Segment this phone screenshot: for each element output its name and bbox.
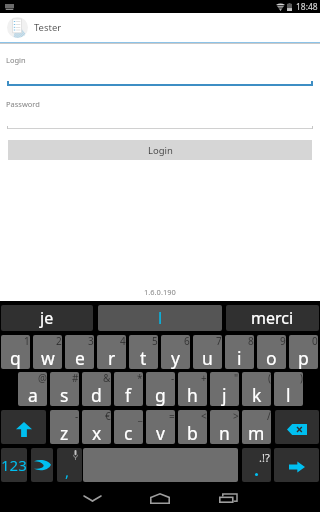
staticText: * <box>137 372 143 385</box>
staticText: w <box>41 346 55 369</box>
staticText: h <box>187 383 198 406</box>
button[interactable]: Login <box>8 140 312 160</box>
button[interactable]: Punctuation <box>242 448 271 482</box>
staticText: c <box>124 421 133 444</box>
button[interactable]: Voice input <box>57 448 82 482</box>
staticText: 9 <box>280 335 286 348</box>
staticText: " <box>234 372 239 385</box>
button[interactable]: @ <box>18 372 47 406</box>
staticText: ( <box>268 372 271 385</box>
button[interactable]: + <box>178 372 207 406</box>
button[interactable]: 5 <box>129 335 158 369</box>
staticText: - <box>75 410 79 423</box>
staticText: merci <box>251 307 294 329</box>
button[interactable]: " <box>210 372 239 406</box>
staticText: 8 <box>248 335 254 348</box>
button[interactable]: je <box>1 305 93 331</box>
staticText: @ <box>38 372 47 385</box>
staticText: # <box>72 372 79 385</box>
button[interactable]: Home <box>140 484 180 512</box>
button[interactable]: = <box>146 410 175 444</box>
staticText: _ <box>138 410 143 423</box>
staticText: 2 <box>56 335 62 348</box>
staticText: v <box>156 421 165 444</box>
button[interactable]: 6 <box>161 335 190 369</box>
staticText: Tester <box>34 21 62 34</box>
staticText: t <box>140 346 147 369</box>
staticText: l <box>286 383 291 406</box>
staticText: 7 <box>216 335 222 348</box>
button[interactable]: & <box>82 372 111 406</box>
button[interactable]: Enter <box>274 448 319 482</box>
button[interactable]: Back <box>72 484 112 512</box>
button[interactable]: - <box>50 410 79 444</box>
staticText: d <box>91 383 102 406</box>
staticText: Login <box>148 144 173 157</box>
button[interactable]: 0 <box>289 335 318 369</box>
staticText: € <box>105 410 111 423</box>
staticText: e <box>75 346 85 369</box>
staticText: - <box>171 372 175 385</box>
staticText: p <box>298 346 309 369</box>
button[interactable]: Swipe input <box>31 448 53 482</box>
button[interactable]: 7 <box>193 335 222 369</box>
button[interactable]: Shift <box>1 410 46 444</box>
staticText: 1 <box>24 335 30 348</box>
staticText: f <box>125 383 132 406</box>
staticText: 0 <box>312 335 318 348</box>
staticText: = <box>169 410 175 423</box>
staticText: q <box>10 346 21 369</box>
button[interactable]: < <box>178 410 207 444</box>
button[interactable]: > <box>210 410 239 444</box>
button[interactable]: ( <box>242 372 271 406</box>
staticText: j <box>222 383 227 406</box>
staticText: 1.6.0.190 <box>144 287 176 297</box>
button[interactable]: Backspace <box>275 410 319 444</box>
staticText: > <box>233 410 239 423</box>
button[interactable]: 8 <box>225 335 254 369</box>
staticText: u <box>202 346 213 369</box>
button[interactable]: 4 <box>97 335 126 369</box>
staticText: Password <box>6 99 40 109</box>
staticText: 4 <box>120 335 126 348</box>
button[interactable]: # <box>50 372 79 406</box>
staticText: 18:48 <box>296 1 318 13</box>
button[interactable]: 1 <box>1 335 30 369</box>
staticText: & <box>103 372 111 385</box>
button[interactable]: 2 <box>33 335 62 369</box>
staticText: je <box>40 307 54 329</box>
button[interactable]: € <box>82 410 111 444</box>
button[interactable]: * <box>114 372 143 406</box>
button[interactable]: 3 <box>65 335 94 369</box>
staticText: a <box>28 383 38 406</box>
staticText: + <box>201 372 207 385</box>
button[interactable]: l <box>98 305 222 331</box>
button[interactable]: App icon <box>7 17 28 38</box>
staticText: r <box>108 346 116 369</box>
button[interactable]: Recent apps <box>208 484 248 512</box>
staticText: b <box>187 421 198 444</box>
staticText: 123 <box>1 455 27 475</box>
button[interactable]: merci <box>226 305 319 331</box>
button[interactable]: - <box>146 372 175 406</box>
button[interactable]: ) <box>274 372 303 406</box>
staticText: .!? <box>259 450 270 465</box>
staticText: i <box>237 346 242 369</box>
button[interactable]: _ <box>114 410 143 444</box>
button[interactable]: 123 <box>1 448 27 482</box>
staticText: n <box>219 421 230 444</box>
staticText: Login <box>6 55 26 65</box>
button[interactable]: 9 <box>257 335 286 369</box>
staticText: m <box>248 421 265 444</box>
staticText: o <box>266 346 277 369</box>
button[interactable]: / <box>242 410 271 444</box>
staticText: l <box>158 307 163 329</box>
staticText: 6 <box>184 335 190 348</box>
staticText: s <box>60 383 69 406</box>
staticText: ) <box>300 372 303 385</box>
staticText: , <box>65 461 70 481</box>
staticText: g <box>155 383 166 406</box>
staticText: / <box>267 410 271 423</box>
staticText: x <box>92 421 102 444</box>
